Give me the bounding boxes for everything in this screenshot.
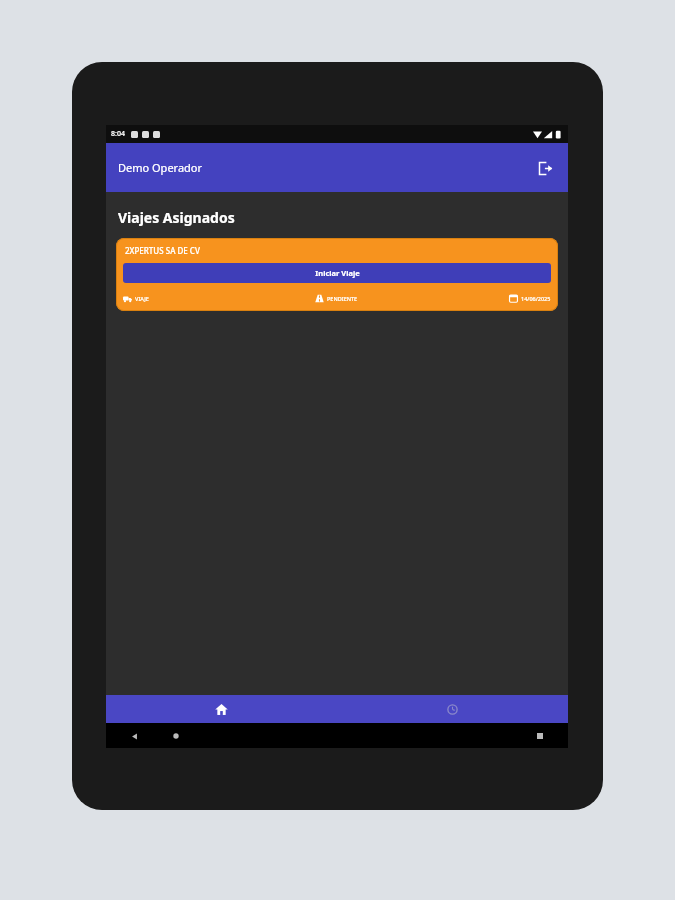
- staticText: PENDIENTE: [327, 295, 358, 302]
- button[interactable]: Inicio: [106, 695, 337, 723]
- button[interactable]: Iniciar Viaje: [123, 263, 551, 283]
- staticText: 2XPERTUS SA DE CV: [125, 245, 200, 256]
- button[interactable]: Inicio: [168, 728, 184, 744]
- staticText: VIAJE: [135, 295, 149, 302]
- button[interactable]: 2XPERTUS SA DE CV: [116, 238, 558, 311]
- staticText: Demo Operador: [118, 160, 203, 175]
- staticText: Viajes Asignados: [118, 208, 235, 227]
- button[interactable]: Atrás: [126, 728, 142, 744]
- staticText: 14/06/2025: [521, 295, 551, 302]
- button[interactable]: Cerrar sesión: [530, 153, 560, 183]
- staticText: Iniciar Viaje: [315, 268, 360, 278]
- button[interactable]: Recientes: [532, 728, 548, 744]
- staticText: 8:04: [111, 129, 125, 139]
- button[interactable]: Historial: [337, 695, 568, 723]
